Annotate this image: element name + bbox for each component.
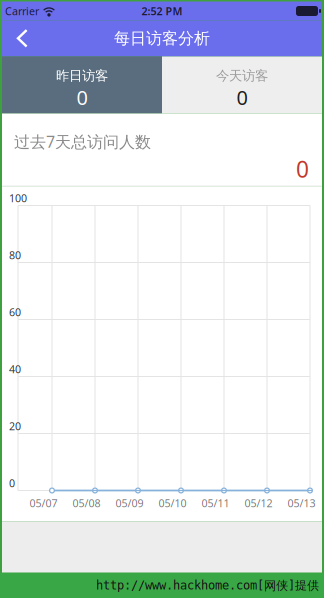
button[interactable]: Back [2, 21, 48, 56]
staticText: 100 [9, 191, 27, 205]
staticText: 05/13 [287, 496, 315, 510]
staticText: 2:52 PM [141, 4, 182, 18]
staticText: 60 [9, 305, 21, 319]
staticText: Carrier [5, 4, 39, 18]
staticText: http://www.hackhome.com[网侠]提供 [96, 578, 319, 593]
staticText: 昨日访客 [56, 67, 108, 84]
staticText: 05/12 [244, 496, 272, 510]
staticText: 05/07 [29, 496, 57, 510]
staticText: 过去7天总访问人数 [14, 131, 151, 152]
staticText: 05/08 [72, 496, 100, 510]
staticText: 80 [9, 248, 21, 262]
button[interactable]: 今天访客 [162, 56, 322, 113]
staticText: 今天访客 [216, 67, 268, 84]
staticText: 0 [76, 84, 87, 110]
staticText: 0 [236, 84, 247, 110]
button[interactable]: 昨日访客 [2, 56, 162, 113]
staticText: 20 [9, 419, 21, 433]
staticText: 每日访客分析 [114, 29, 210, 48]
staticText: 05/09 [115, 496, 143, 510]
staticText: 05/11 [201, 496, 229, 510]
staticText: 0 [296, 154, 309, 184]
staticText: 05/10 [158, 496, 186, 510]
staticText: 0 [9, 476, 15, 490]
staticText: 40 [9, 362, 21, 376]
